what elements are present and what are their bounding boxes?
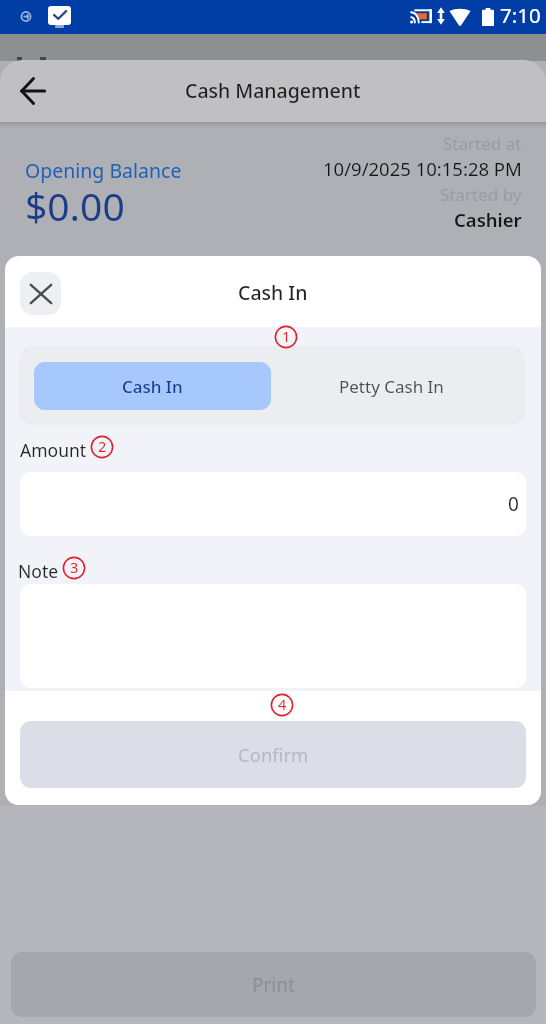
- staticText: Cash Management: [185, 77, 361, 104]
- staticText: Petty Cash In: [339, 375, 444, 398]
- button[interactable]: Back: [10, 68, 56, 114]
- button[interactable]: Cash In: [34, 362, 271, 410]
- staticText: 4: [278, 694, 287, 714]
- button[interactable]: 0: [20, 472, 526, 536]
- staticText: 1: [282, 326, 291, 346]
- staticText: Print: [252, 972, 295, 998]
- staticText: 2: [98, 436, 107, 456]
- staticText: 10/9/2025 10:15:28 PM: [323, 156, 522, 181]
- button[interactable]: Petty Cash In: [273, 362, 510, 410]
- staticText: Cashier: [454, 207, 522, 232]
- staticText: Opening Balance: [25, 157, 182, 184]
- staticText: 7:10: [500, 1, 541, 29]
- staticText: Started by: [440, 183, 522, 206]
- button[interactable]: Close: [20, 272, 61, 315]
- staticText: 3: [70, 557, 79, 577]
- staticText: Started at: [443, 132, 522, 155]
- staticText: 0: [508, 491, 519, 517]
- staticText: Note: [18, 559, 59, 583]
- staticText: $0.00: [25, 179, 125, 232]
- staticText: Amount: [20, 438, 87, 462]
- staticText: Cash In: [238, 279, 308, 306]
- staticText: Cash In: [122, 375, 183, 398]
- button[interactable]: Confirm: [20, 721, 526, 788]
- staticText: Confirm: [238, 742, 309, 767]
